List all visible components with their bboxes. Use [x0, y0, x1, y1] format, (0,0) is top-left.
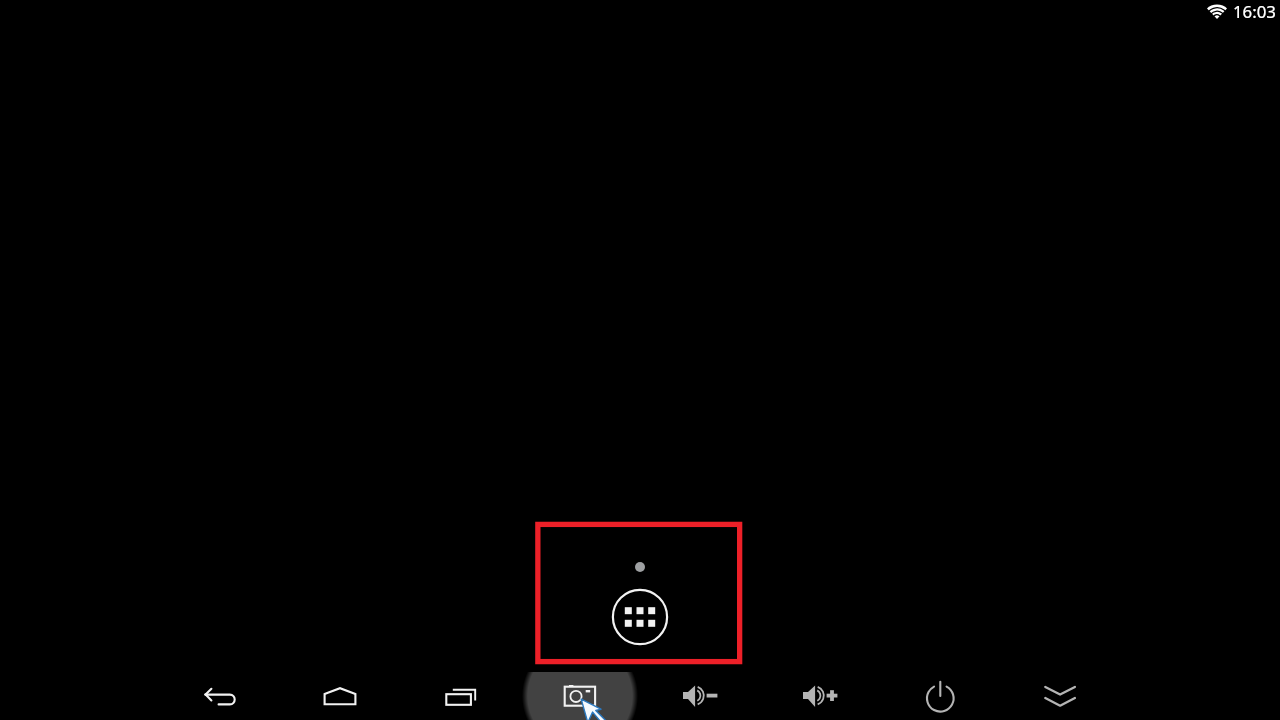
button[interactable]: Screenshot	[560, 672, 602, 720]
button[interactable]: Recent apps	[440, 672, 482, 720]
button[interactable]: Power	[920, 672, 962, 720]
button[interactable]: Expand	[1040, 672, 1082, 720]
button[interactable]: Apps	[611, 588, 669, 646]
button[interactable]: Back	[200, 672, 240, 720]
button[interactable]: Volume up	[800, 672, 842, 720]
button[interactable]: Volume down	[680, 672, 722, 720]
staticText: 16:03	[1233, 0, 1276, 23]
button[interactable]: Home	[320, 672, 360, 720]
